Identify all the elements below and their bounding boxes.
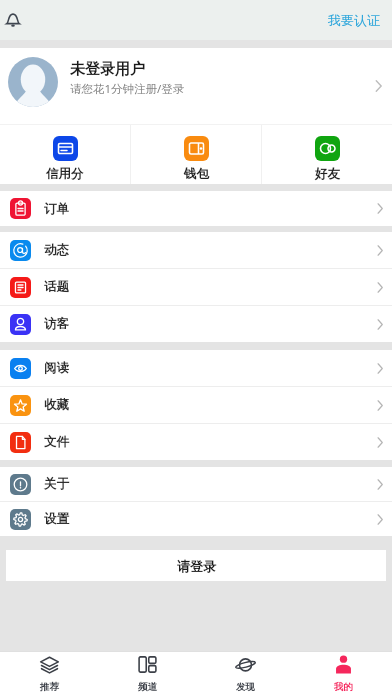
staticText: 话题 [44, 279, 69, 295]
staticText: 请登录 [177, 558, 216, 574]
staticText: 订单 [44, 201, 69, 217]
button[interactable]: 访客 [0, 306, 392, 342]
button[interactable]: 发现 [196, 652, 294, 696]
button[interactable]: 设置 [0, 502, 392, 536]
button[interactable]: 我要认证 [328, 12, 380, 28]
staticText: 关于 [44, 476, 69, 492]
button[interactable]: 关于 [0, 467, 392, 501]
button[interactable]: 动态 [0, 232, 392, 268]
button[interactable]: 阅读 [0, 350, 392, 386]
staticText: 未登录用户 [70, 60, 145, 79]
staticText: 访客 [44, 316, 69, 332]
button[interactable]: 频道 [98, 652, 196, 696]
staticText: 信用分 [46, 166, 84, 182]
staticText: 设置 [44, 511, 69, 527]
button[interactable]: 请登录 [6, 550, 386, 581]
staticText: 推荐 [40, 681, 59, 693]
button[interactable]: 推荐 [0, 652, 98, 696]
button[interactable]: Notifications [0, 7, 26, 33]
button[interactable]: 好友 [262, 125, 392, 184]
staticText: 我的 [334, 681, 353, 693]
staticText: 好友 [315, 166, 340, 182]
button[interactable]: 未登录用户 [0, 48, 392, 124]
button[interactable]: 订单 [0, 191, 392, 226]
staticText: 阅读 [44, 360, 69, 376]
staticText: 频道 [138, 681, 157, 693]
staticText: 发现 [236, 681, 255, 693]
staticText: 动态 [44, 242, 69, 258]
staticText: 钱包 [184, 166, 209, 182]
button[interactable]: 钱包 [131, 125, 261, 184]
button[interactable]: 我的 [294, 652, 392, 696]
staticText: 文件 [44, 434, 69, 450]
staticText: 我要认证 [328, 12, 380, 28]
staticText: 请您花1分钟注册/登录 [70, 81, 185, 97]
button[interactable]: 信用分 [0, 125, 130, 184]
staticText: 收藏 [44, 397, 69, 413]
button[interactable]: 文件 [0, 424, 392, 460]
button[interactable]: 话题 [0, 269, 392, 305]
button[interactable]: 收藏 [0, 387, 392, 423]
